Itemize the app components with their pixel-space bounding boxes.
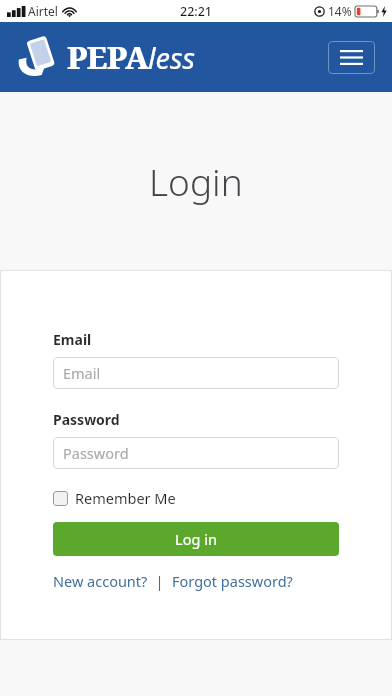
staticText: Email xyxy=(63,363,101,383)
staticText: Password xyxy=(63,443,129,463)
staticText: Login xyxy=(149,156,243,206)
staticText: New account? xyxy=(53,571,148,591)
staticText: 22:21 xyxy=(180,3,213,20)
button[interactable]: Password xyxy=(53,437,339,469)
button[interactable]: New account? xyxy=(53,571,148,591)
staticText: Log in xyxy=(175,529,217,549)
staticText: | xyxy=(148,571,172,591)
staticText: PEPA xyxy=(67,36,149,78)
staticText: less xyxy=(148,38,196,77)
staticText: 14% xyxy=(328,3,352,19)
staticText: Forgot password? xyxy=(172,571,293,591)
button[interactable]: PEPA xyxy=(17,36,197,78)
staticText: Password xyxy=(53,410,120,429)
button[interactable]: Open menu xyxy=(328,41,375,74)
button[interactable]: Remember Me xyxy=(53,488,176,508)
button[interactable]: Log in xyxy=(53,522,339,556)
button[interactable]: Forgot password? xyxy=(172,571,293,591)
staticText: Airtel xyxy=(28,3,58,19)
button[interactable]: Email xyxy=(53,357,339,389)
staticText: Email xyxy=(53,330,92,349)
staticText: Remember Me xyxy=(75,488,176,508)
